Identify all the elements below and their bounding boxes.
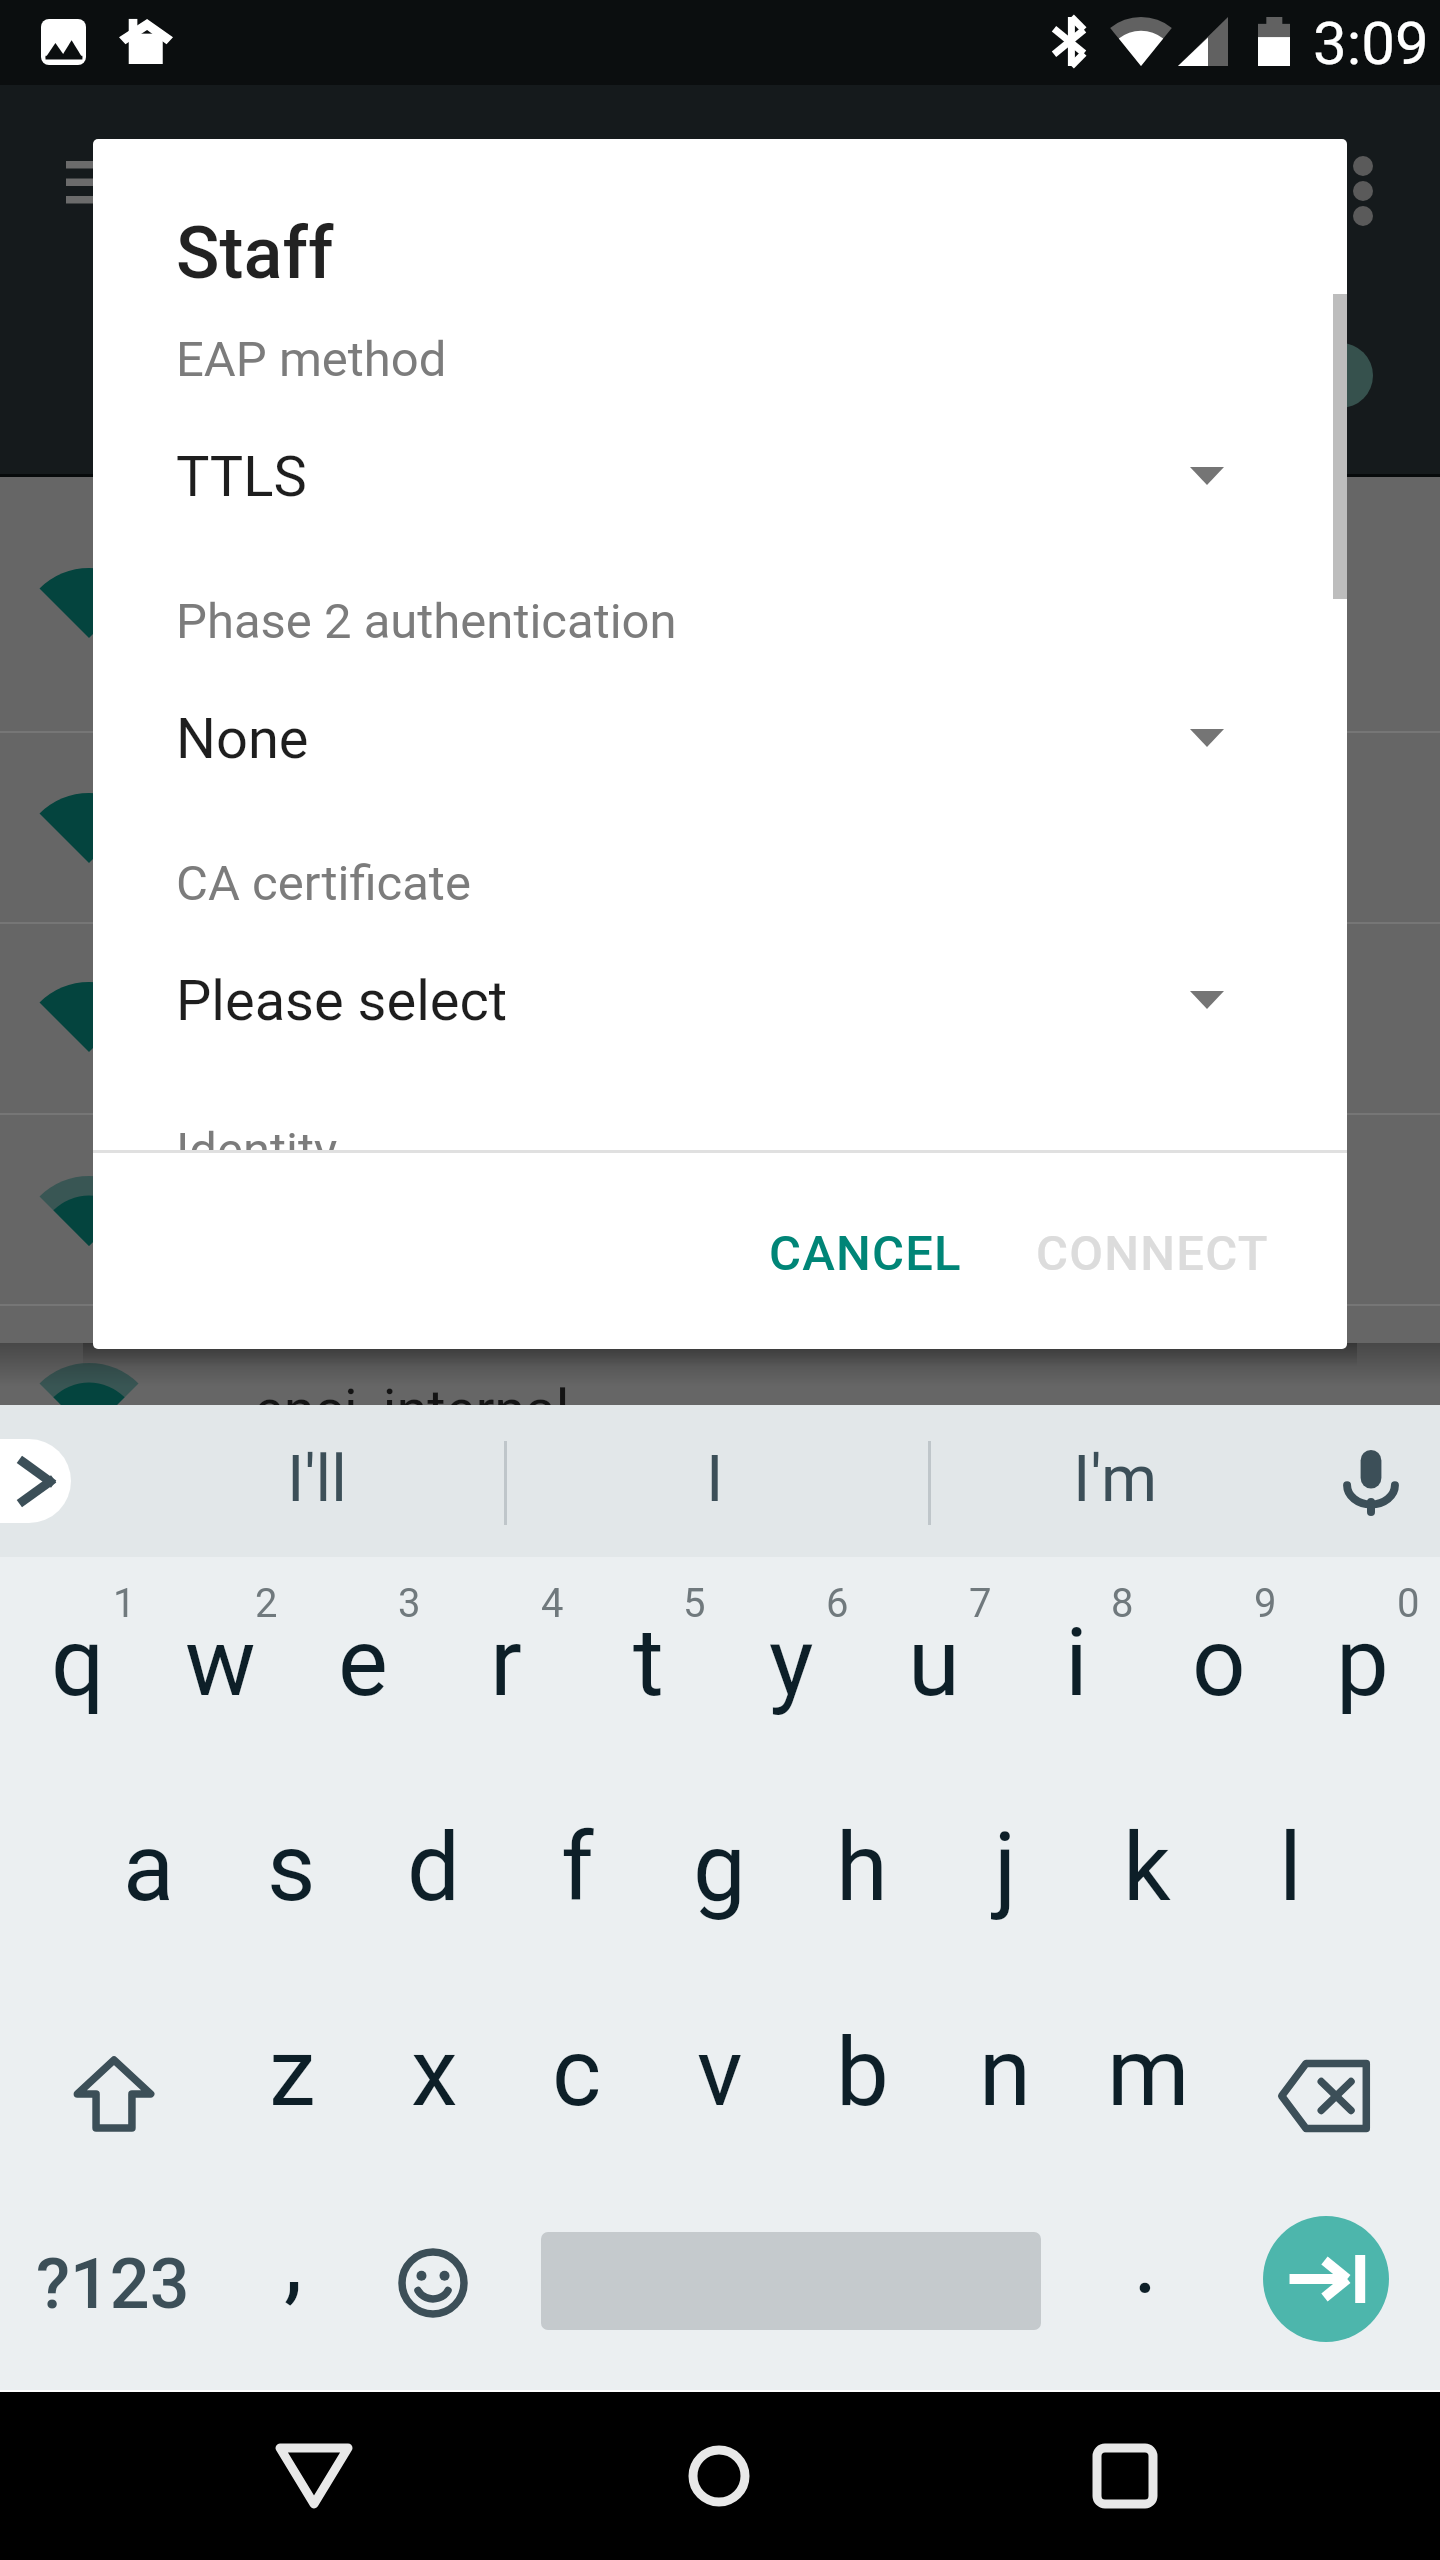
- staticText: t: [633, 1608, 664, 1718]
- button[interactable]: k: [1075, 1791, 1219, 1996]
- button[interactable]: Shift: [0, 1996, 216, 2201]
- staticText: I: [706, 1442, 724, 1517]
- staticText: .: [1133, 2205, 1158, 2315]
- staticText: I'll: [287, 1442, 347, 1517]
- button[interactable]: More options: [1319, 136, 1407, 246]
- staticText: r: [490, 1608, 522, 1718]
- staticText: 8: [1111, 1580, 1134, 1627]
- button[interactable]: iot_devices: [0, 1090, 1440, 1281]
- staticText: m: [1107, 2018, 1190, 2128]
- staticText: 1: [113, 1580, 136, 1627]
- staticText: Staff: [254, 996, 375, 1062]
- button[interactable]: I'm: [975, 1405, 1255, 1557]
- staticText: Guest: [254, 807, 400, 873]
- staticText: I'm: [1073, 1442, 1158, 1517]
- button[interactable]: Staff: [0, 896, 1440, 1087]
- button[interactable]: m: [1076, 1996, 1220, 2201]
- button[interactable]: Voice input: [1316, 1426, 1426, 1536]
- button[interactable]: I'll: [177, 1405, 457, 1557]
- staticText: 6: [826, 1580, 849, 1627]
- button[interactable]: g: [647, 1791, 791, 1996]
- button[interactable]: h: [790, 1791, 934, 1996]
- staticText: y: [769, 1608, 814, 1718]
- button[interactable]: t: [576, 1586, 720, 1791]
- button[interactable]: x: [362, 1996, 506, 2201]
- staticText: a: [123, 1813, 175, 1923]
- button[interactable]: Dormy: [0, 482, 1440, 673]
- button[interactable]: Expand dropdown: [1172, 445, 1242, 507]
- button[interactable]: Expand dropdown: [1172, 707, 1242, 769]
- staticText: i: [1065, 1608, 1088, 1718]
- staticText: 7: [969, 1580, 992, 1627]
- button[interactable]: w: [148, 1586, 292, 1791]
- button[interactable]: .: [1074, 2191, 1220, 2380]
- staticText: CONNECT: [1036, 1225, 1269, 1282]
- button[interactable]: b: [790, 1996, 934, 2201]
- staticText: b: [836, 2018, 889, 2128]
- button[interactable]: Show more suggestions: [0, 1439, 71, 1523]
- staticText: 5: [683, 1580, 706, 1627]
- button[interactable]: enci_internal: [0, 1277, 1440, 1468]
- button[interactable]: q: [6, 1586, 150, 1791]
- staticText: 2: [255, 1580, 278, 1627]
- button[interactable]: l: [1218, 1791, 1362, 1996]
- button[interactable]: Backspace: [1216, 1996, 1432, 2201]
- staticText: p: [1336, 1608, 1389, 1718]
- button[interactable]: f: [505, 1791, 649, 1996]
- button[interactable]: Emoji: [360, 2191, 506, 2380]
- staticText: h: [836, 1813, 888, 1923]
- button[interactable]: Expand dropdown: [1172, 969, 1242, 1031]
- staticText: d: [407, 1813, 461, 1923]
- button[interactable]: e: [291, 1586, 435, 1791]
- staticText: k: [1123, 1813, 1171, 1923]
- button[interactable]: s: [219, 1791, 363, 1996]
- staticText: s: [267, 1813, 316, 1923]
- button[interactable]: ?123: [0, 2191, 226, 2380]
- staticText: Please select: [176, 968, 508, 1034]
- staticText: w: [185, 1608, 256, 1718]
- staticText: CANCEL: [769, 1225, 962, 1282]
- button[interactable]: j: [933, 1791, 1077, 1996]
- staticText: e: [338, 1608, 388, 1718]
- button[interactable]: a: [77, 1791, 221, 1996]
- button[interactable]: z: [220, 1996, 364, 2201]
- staticText: v: [697, 2018, 743, 2128]
- button[interactable]: CANCEL: [746, 1198, 984, 1308]
- staticText: CA certificate: [176, 855, 471, 912]
- staticText: None: [176, 706, 309, 772]
- button[interactable]: u: [862, 1586, 1006, 1791]
- staticText: q: [51, 1608, 105, 1718]
- button[interactable]: y: [719, 1586, 863, 1791]
- button[interactable]: Enter: [1214, 2191, 1434, 2380]
- button[interactable]: d: [362, 1791, 506, 1996]
- button[interactable]: p: [1290, 1586, 1434, 1791]
- button[interactable]: v: [648, 1996, 792, 2201]
- button[interactable]: Open navigation drawer: [20, 136, 120, 228]
- button[interactable]: c: [505, 1996, 649, 2201]
- staticText: Dormy: [254, 582, 418, 648]
- staticText: Identity: [176, 1122, 338, 1150]
- staticText: 9: [1254, 1580, 1277, 1627]
- button[interactable]: Space: [506, 2191, 1074, 2380]
- button[interactable]: o: [1147, 1586, 1291, 1791]
- staticText: f: [561, 1813, 594, 1923]
- button[interactable]: Guest: [0, 707, 1440, 898]
- button[interactable]: ,: [226, 2191, 360, 2380]
- staticText: c: [552, 2018, 602, 2128]
- button[interactable]: CONNECT: [1012, 1198, 1292, 1308]
- button[interactable]: Home: [659, 2392, 779, 2560]
- button[interactable]: i: [1004, 1586, 1148, 1791]
- button[interactable]: I: [575, 1405, 855, 1557]
- staticText: n: [979, 2018, 1031, 2128]
- button[interactable]: r: [434, 1586, 578, 1791]
- button[interactable]: n: [933, 1996, 1077, 2201]
- button[interactable]: Recent apps: [1065, 2392, 1185, 2560]
- staticText: z: [269, 2018, 316, 2128]
- staticText: o: [1192, 1608, 1246, 1718]
- staticText: TTLS: [176, 444, 307, 510]
- staticText: x: [411, 2018, 458, 2128]
- staticText: Staff: [176, 211, 334, 295]
- button[interactable]: Back: [254, 2392, 374, 2560]
- staticText: g: [693, 1813, 746, 1923]
